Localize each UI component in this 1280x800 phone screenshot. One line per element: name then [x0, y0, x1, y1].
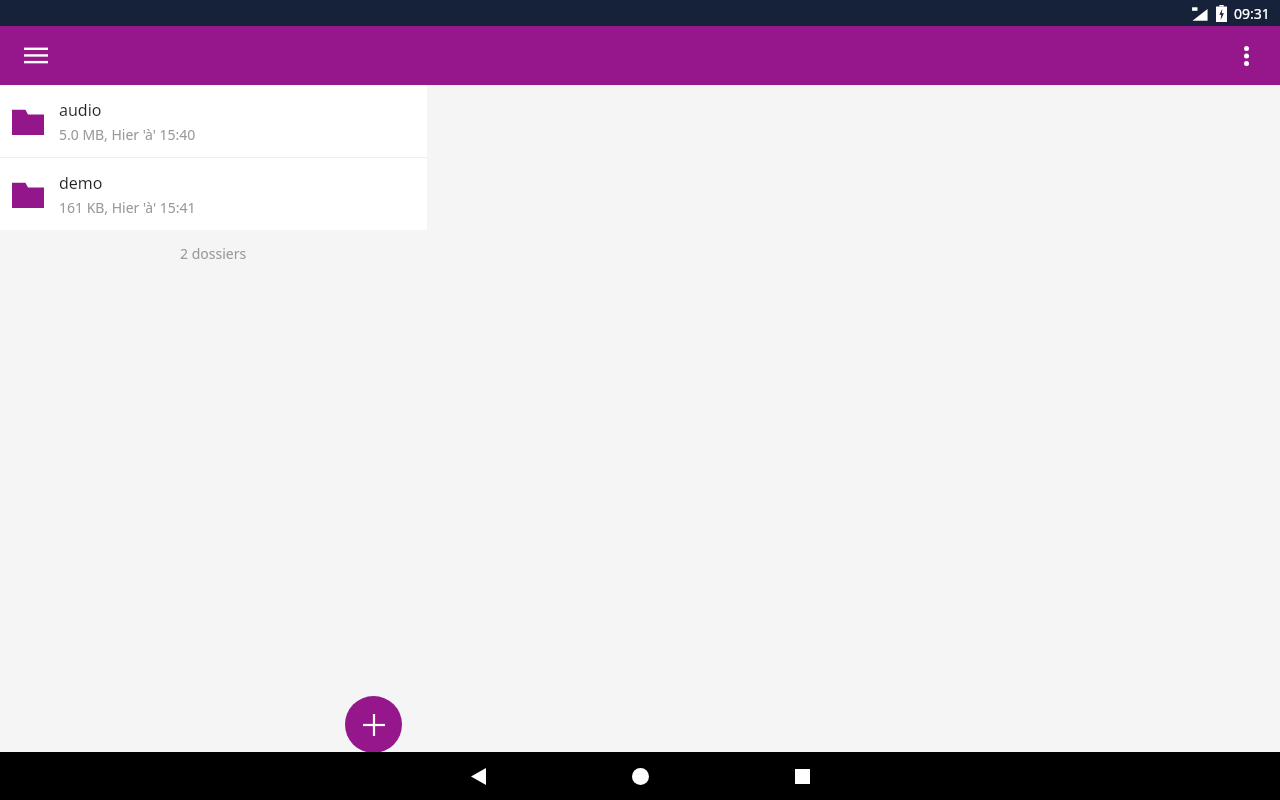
- button[interactable]: Recent apps: [778, 752, 826, 800]
- button[interactable]: demo: [0, 158, 427, 230]
- button[interactable]: Add: [345, 696, 402, 753]
- staticText: 161 KB, Hier 'à' 15:41: [59, 198, 196, 217]
- button[interactable]: More options: [1222, 32, 1270, 80]
- button[interactable]: audio: [0, 85, 427, 157]
- staticText: audio: [59, 99, 102, 121]
- button[interactable]: Home: [616, 752, 664, 800]
- staticText: 2 dossiers: [180, 244, 247, 263]
- staticText: 5.0 MB, Hier 'à' 15:40: [59, 125, 196, 144]
- staticText: demo: [59, 172, 103, 194]
- button[interactable]: Navigation menu: [12, 32, 60, 80]
- staticText: 09:31: [1234, 4, 1270, 23]
- button[interactable]: Back: [454, 752, 502, 800]
